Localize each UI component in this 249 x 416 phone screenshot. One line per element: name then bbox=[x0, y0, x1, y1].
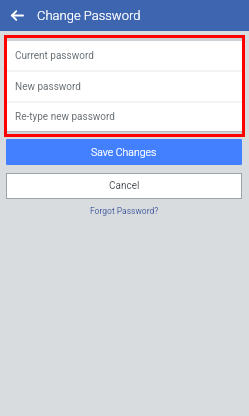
staticText: Forgot Password? bbox=[90, 206, 159, 216]
staticText: Change Password bbox=[37, 8, 141, 23]
staticText: Current password bbox=[15, 50, 94, 62]
button[interactable]: Save Changes bbox=[6, 139, 242, 165]
staticText: New password bbox=[15, 81, 81, 93]
staticText: Re-type new password bbox=[15, 111, 115, 123]
button[interactable]: New password bbox=[7, 72, 242, 101]
button[interactable]: Forgot Password? bbox=[90, 206, 159, 216]
button[interactable]: Current password bbox=[7, 41, 242, 70]
button[interactable]: Re-type new password bbox=[7, 103, 242, 131]
staticText: Cancel bbox=[109, 180, 140, 192]
staticText: Save Changes bbox=[91, 146, 157, 158]
button[interactable]: Cancel bbox=[7, 174, 241, 198]
button[interactable]: Back bbox=[0, 0, 31, 31]
